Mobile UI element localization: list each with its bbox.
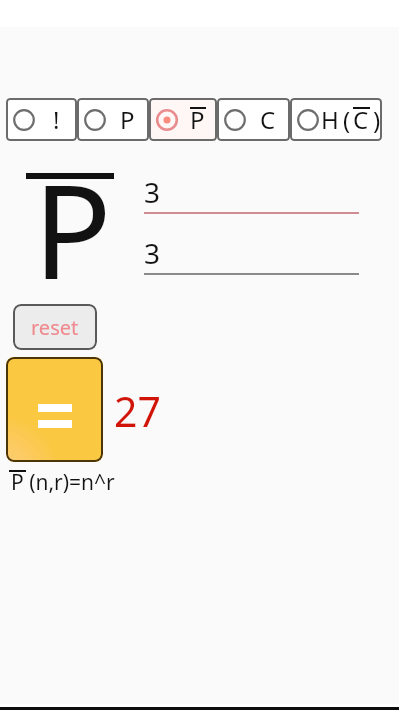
button[interactable]: C bbox=[217, 98, 290, 141]
staticText: P bbox=[120, 103, 135, 136]
staticText: 3 bbox=[144, 173, 161, 211]
staticText: ! bbox=[53, 103, 60, 136]
staticText: P bbox=[190, 103, 205, 136]
staticText: ) bbox=[373, 103, 381, 136]
button[interactable]: ! bbox=[6, 98, 77, 141]
button[interactable]: P bbox=[77, 98, 149, 141]
button[interactable]: Equals bbox=[6, 357, 103, 462]
staticText: reset bbox=[31, 314, 79, 341]
staticText: 3 bbox=[144, 234, 161, 272]
staticText: 27 bbox=[114, 383, 161, 439]
staticText: ( bbox=[343, 103, 351, 136]
button[interactable]: H bbox=[290, 98, 382, 141]
button[interactable]: reset bbox=[13, 304, 97, 350]
staticText: H bbox=[321, 103, 339, 136]
staticText: C bbox=[260, 103, 276, 136]
staticText: P bbox=[33, 140, 112, 317]
staticText: P (n,r)=n^r bbox=[11, 468, 115, 497]
button[interactable]: P bbox=[149, 98, 217, 141]
staticText: C bbox=[353, 103, 369, 136]
